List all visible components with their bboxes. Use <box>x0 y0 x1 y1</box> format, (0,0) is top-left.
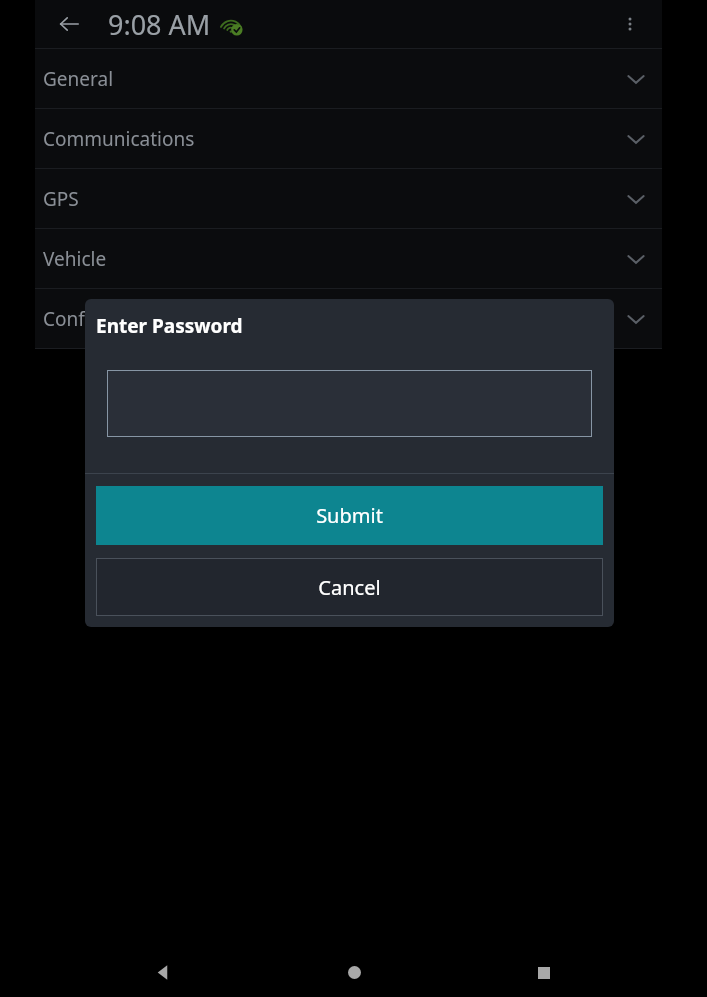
staticText: Vehicle <box>43 246 107 272</box>
staticText: Configuration <box>43 306 167 332</box>
staticText: Communications <box>43 126 195 152</box>
staticText: Submit <box>316 502 383 529</box>
button[interactable]: Configuration <box>35 289 662 348</box>
staticText: General <box>43 66 114 92</box>
button[interactable]: Communications <box>35 109 662 168</box>
button[interactable]: Recent apps <box>516 948 572 997</box>
button[interactable] <box>107 370 592 437</box>
staticText: Cancel <box>318 574 381 601</box>
button[interactable]: Submit <box>96 486 603 545</box>
button[interactable]: Back <box>45 0 93 48</box>
staticText: Enter Password <box>96 313 243 339</box>
button[interactable]: GPS <box>35 169 662 228</box>
button[interactable]: Home <box>326 948 382 997</box>
button[interactable]: General <box>35 49 662 108</box>
button[interactable]: Cancel <box>96 558 603 616</box>
button[interactable]: Back <box>135 948 191 997</box>
button[interactable]: More options <box>606 0 654 48</box>
staticText: GPS <box>43 186 79 212</box>
staticText: 9:08 AM <box>108 6 211 43</box>
button[interactable]: Vehicle <box>35 229 662 288</box>
